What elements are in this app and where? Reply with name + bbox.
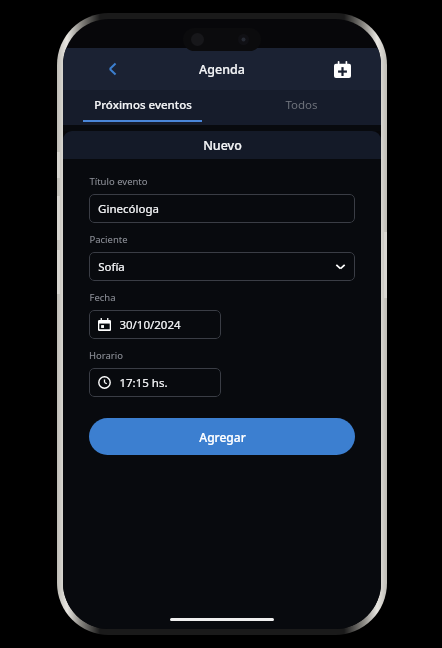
staticText: Fecha [89, 291, 116, 304]
staticText: 30/10/2024 [119, 317, 181, 333]
staticText: Horario [89, 349, 123, 362]
staticText: Todos [285, 97, 318, 113]
button[interactable]: 30/10/2024 [89, 310, 221, 339]
button[interactable]: Ginecóloga [89, 194, 355, 223]
staticText: Sofía [98, 259, 125, 275]
staticText: Título evento [89, 175, 148, 188]
staticText: Próximos eventos [94, 97, 192, 113]
staticText: 17:15 hs. [119, 375, 168, 391]
staticText: Ginecóloga [98, 201, 159, 217]
button[interactable]: Add event [327, 54, 357, 84]
staticText: Paciente [89, 233, 128, 246]
staticText: Nuevo [203, 137, 242, 154]
button[interactable]: Back [99, 55, 127, 83]
button[interactable]: 17:15 hs. [89, 368, 221, 397]
staticText: Agenda [199, 61, 245, 78]
staticText: Agregar [199, 429, 246, 445]
button[interactable]: Próximos eventos [63, 90, 222, 125]
button[interactable]: Sofía [89, 252, 355, 281]
button[interactable]: Todos [222, 90, 381, 125]
button[interactable]: Agregar [89, 418, 355, 455]
